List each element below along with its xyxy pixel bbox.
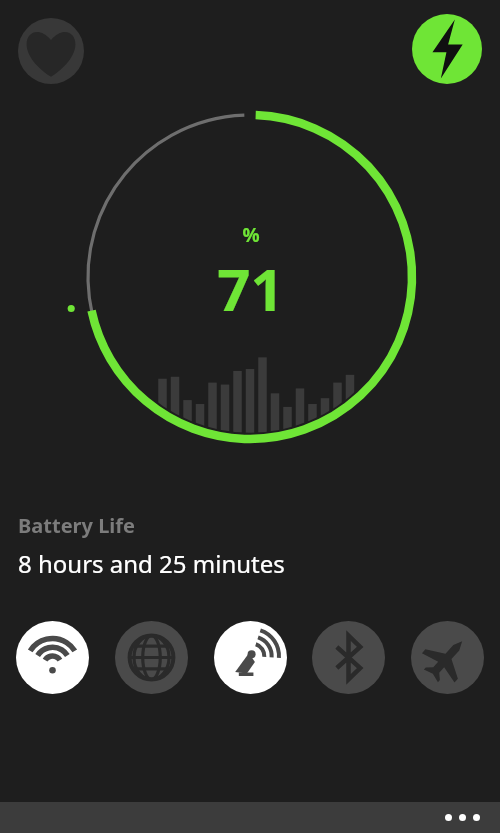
- button[interactable]: Airplane mode: [411, 621, 484, 694]
- button[interactable]: Wi-Fi: [16, 621, 89, 694]
- button[interactable]: Favorite: [18, 18, 84, 84]
- button[interactable]: Bluetooth: [312, 621, 385, 694]
- button[interactable]: More options: [439, 808, 486, 827]
- button[interactable]: Mobile data: [115, 621, 188, 694]
- button[interactable]: Location: [214, 621, 287, 694]
- staticText: 8 hours and 25 minutes: [18, 547, 285, 580]
- staticText: Battery Life: [18, 512, 135, 539]
- staticText: %: [242, 222, 260, 248]
- button[interactable]: Charging: [412, 14, 482, 84]
- staticText: 71: [217, 249, 284, 328]
